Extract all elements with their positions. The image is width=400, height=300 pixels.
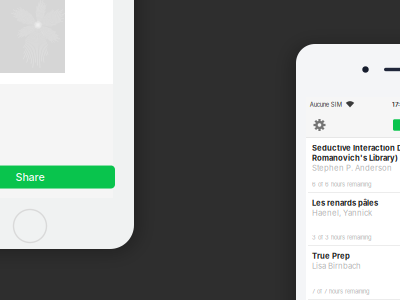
- staticText: 6 of 6 hours remaining: [312, 181, 372, 188]
- button[interactable]: Share: [0, 165, 115, 188]
- button[interactable]: True Prep: [306, 246, 400, 300]
- staticText: Seductive Interaction Design (: [312, 143, 400, 153]
- button[interactable]: Settings: [313, 118, 326, 131]
- staticText: 7 of 7 hours remaining: [312, 288, 370, 295]
- staticText: True Prep: [312, 251, 350, 261]
- button[interactable]: Les renards pâles: [306, 193, 400, 246]
- staticText: Share: [15, 170, 44, 183]
- staticText: Les renards pâles: [312, 198, 378, 208]
- staticText: Lisa Birnbach: [312, 261, 361, 271]
- staticText: Aucune SIM: [310, 101, 342, 108]
- button[interactable]: Seductive Interaction Design (: [306, 138, 400, 193]
- staticText: 17:41: [392, 101, 400, 108]
- staticText: Stephen P. Anderson: [312, 163, 392, 173]
- staticText: 3 of 3 hours remaining: [312, 234, 372, 241]
- staticText: Romanovich's Library): [312, 153, 398, 163]
- button[interactable]: Add book: [393, 119, 400, 131]
- staticText: Haenel, Yannick: [312, 208, 372, 218]
